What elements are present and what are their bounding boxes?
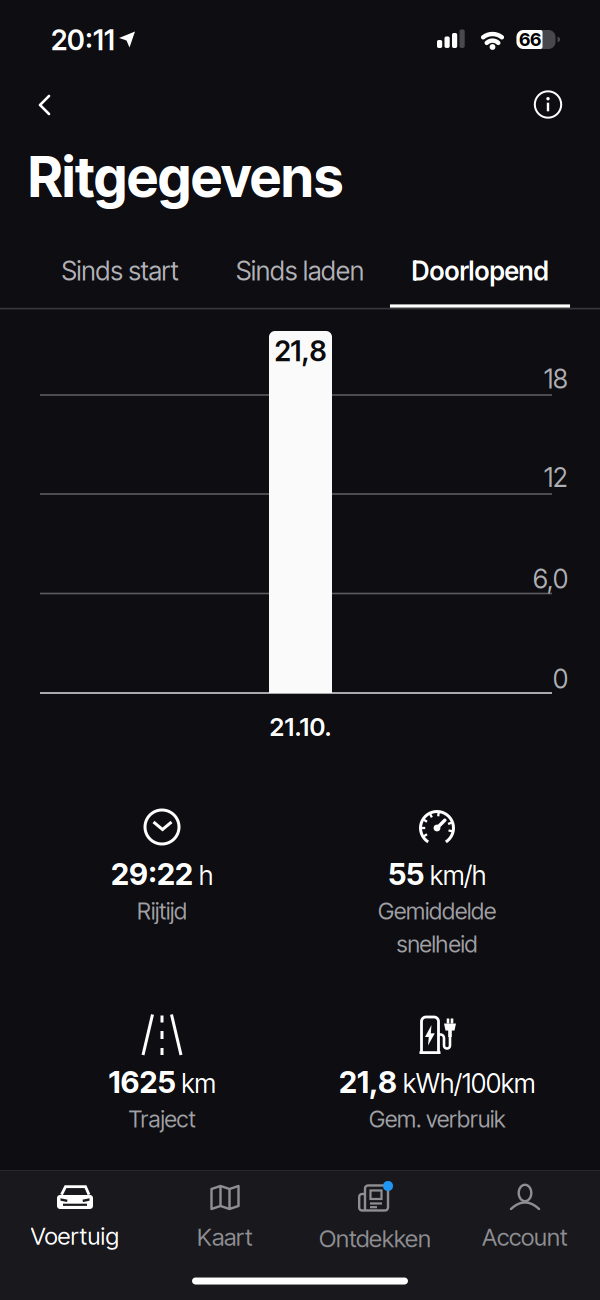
staticText: 0 — [553, 663, 568, 695]
staticText: Traject — [128, 1105, 195, 1133]
staticText: Kaart — [197, 1222, 253, 1251]
staticText: Sinds start — [61, 255, 178, 287]
staticText: 66 — [519, 29, 541, 50]
button[interactable]: Sinds laden — [210, 240, 390, 302]
button[interactable]: Account — [450, 1171, 600, 1265]
staticText: snelheid — [396, 930, 477, 958]
button[interactable]: Voertuig — [0, 1171, 150, 1265]
button[interactable]: Back — [22, 87, 66, 123]
staticText: 6,0 — [533, 563, 568, 595]
button[interactable]: Info — [528, 86, 568, 122]
staticText: Rijtijd — [137, 897, 187, 925]
staticText: Ritgegevens — [28, 144, 343, 210]
staticText: 21,8 — [274, 334, 326, 368]
staticText: 18 — [544, 363, 568, 395]
button[interactable]: Sinds start — [30, 240, 210, 302]
button[interactable]: Ontdekken — [300, 1171, 450, 1265]
staticText: 29:22 h — [111, 856, 213, 892]
staticText: Ontdekken — [319, 1224, 431, 1253]
staticText: 21.10. — [269, 712, 331, 742]
staticText: Gem. verbruik — [369, 1105, 505, 1133]
staticText: Sinds laden — [236, 255, 364, 287]
staticText: Gemiddelde — [378, 897, 496, 925]
button[interactable]: Kaart — [150, 1171, 300, 1265]
staticText: Voertuig — [30, 1221, 119, 1250]
staticText: Account — [482, 1222, 568, 1251]
staticText: Doorlopend — [411, 255, 548, 287]
staticText: 1625 km — [108, 1064, 215, 1100]
staticText: 55 km/h — [388, 856, 486, 892]
staticText: 20:11 — [51, 23, 115, 57]
button[interactable]: Doorlopend — [390, 240, 570, 302]
staticText: 21,8 kWh/100km — [339, 1064, 535, 1100]
staticText: 12 — [544, 462, 568, 493]
